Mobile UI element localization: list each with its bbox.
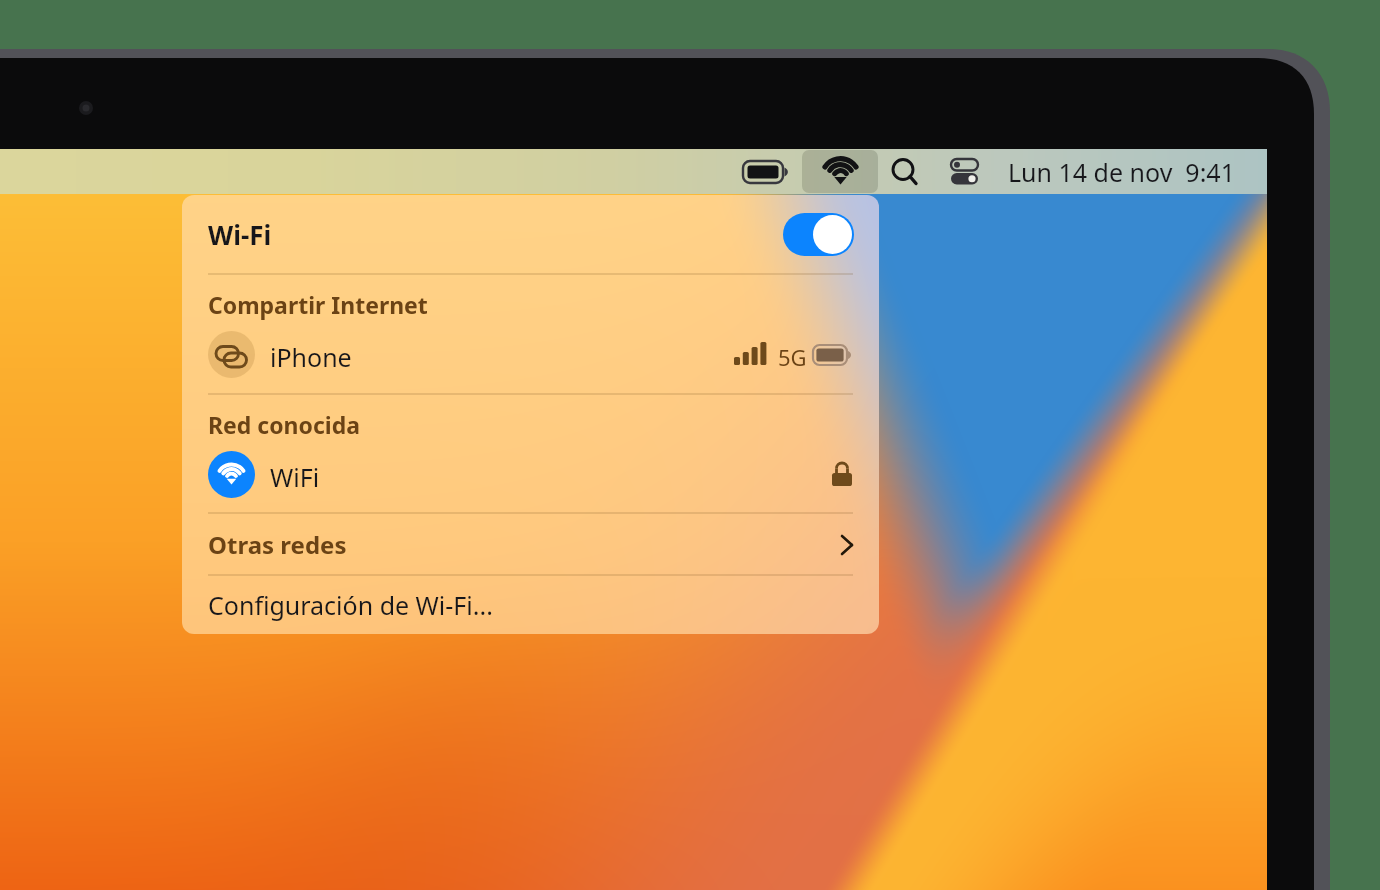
button[interactable]: Wi-Fi <box>182 195 879 274</box>
button[interactable]: Configuración de Wi-Fi... <box>182 575 879 634</box>
staticText: iPhone <box>270 340 352 374</box>
button[interactable]: WiFi <box>182 446 879 504</box>
button[interactable]: Lun 14 de nov 9:41 <box>1001 149 1241 194</box>
staticText: 5G <box>778 342 807 372</box>
staticText: Configuración de Wi-Fi... <box>208 588 493 622</box>
button[interactable]: iPhone <box>182 326 879 384</box>
staticText: Red conocida <box>208 409 360 440</box>
button[interactable]: Wi-Fi <box>802 150 878 193</box>
staticText: WiFi <box>270 460 320 494</box>
button[interactable]: Control Center <box>942 149 986 194</box>
button[interactable]: Battery <box>736 149 794 194</box>
button[interactable]: Search <box>884 149 926 194</box>
button[interactable]: Otras redes <box>182 513 879 575</box>
staticText: Otras redes <box>208 528 347 561</box>
staticText: Wi-Fi <box>208 217 272 252</box>
staticText: Lun 14 de nov 9:41 <box>1008 155 1235 189</box>
staticText: Compartir Internet <box>208 289 428 320</box>
